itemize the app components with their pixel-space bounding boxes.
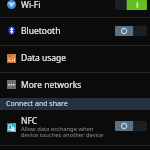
button[interactable]: Data usage xyxy=(0,46,150,72)
staticText: More networks xyxy=(21,79,82,91)
button[interactable]: Connect and share xyxy=(0,98,150,110)
staticText: Allow data exchange when device touches … xyxy=(21,125,109,138)
staticText: Bluetooth xyxy=(21,25,61,37)
button[interactable]: Wi-Fi xyxy=(0,0,150,17)
button[interactable]: More networks xyxy=(0,73,150,98)
button[interactable]: Switch on xyxy=(115,0,147,10)
button[interactable]: Switch off xyxy=(115,26,147,36)
button[interactable]: Switch off xyxy=(115,121,147,131)
button[interactable]: NFC xyxy=(0,110,150,145)
staticText: Connect and share xyxy=(6,99,68,109)
button[interactable]: Bluetooth xyxy=(0,18,150,45)
staticText: Data usage xyxy=(21,52,67,64)
staticText: Wi-Fi xyxy=(21,0,41,11)
staticText: NFC xyxy=(21,115,38,127)
